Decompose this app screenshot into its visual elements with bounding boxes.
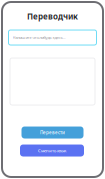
staticText: Напишите что-нибудь здесь... (12, 35, 65, 40)
staticText: Перевести (40, 129, 65, 136)
staticText: Переводчик (27, 11, 78, 22)
button[interactable]: Перевести (21, 126, 83, 138)
button[interactable]: Сменить язык (20, 144, 84, 156)
staticText: Сменить язык (38, 148, 66, 153)
